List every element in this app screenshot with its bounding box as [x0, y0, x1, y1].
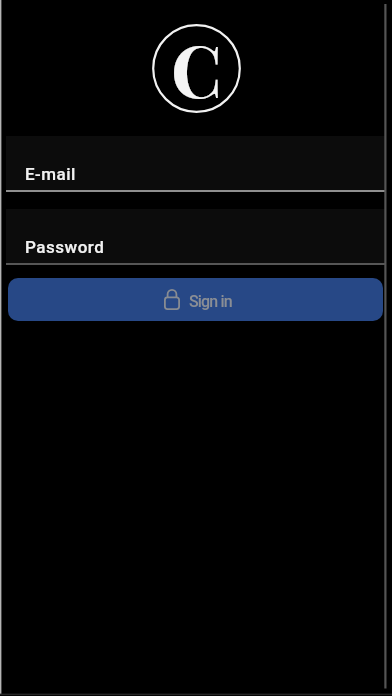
- staticText: C: [171, 20, 222, 109]
- button[interactable]: E-mail: [6, 136, 386, 192]
- button[interactable]: Sign in: [8, 278, 383, 321]
- staticText: Sign in: [189, 292, 232, 311]
- button[interactable]: Password: [6, 209, 386, 265]
- staticText: Password: [25, 237, 105, 257]
- staticText: E-mail: [25, 164, 76, 184]
